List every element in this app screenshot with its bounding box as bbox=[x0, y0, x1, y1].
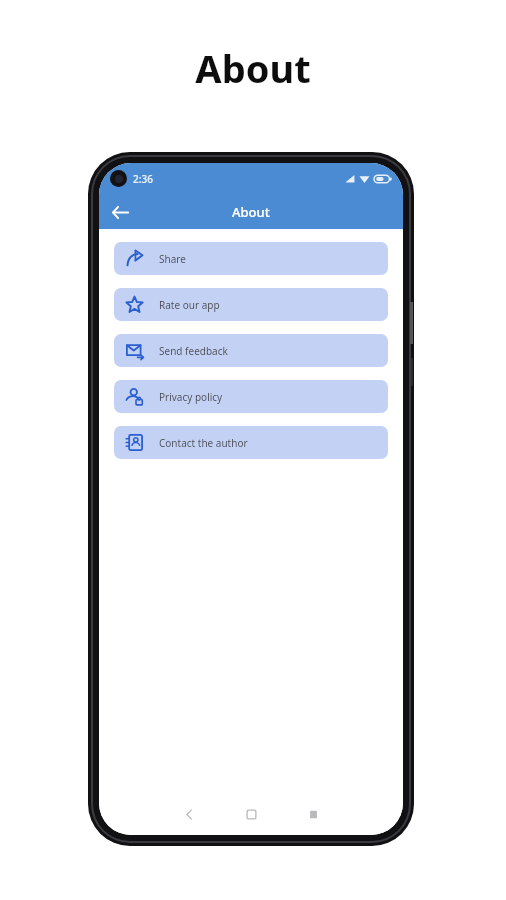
button[interactable]: Recent apps bbox=[299, 800, 327, 828]
button[interactable]: Send feedback bbox=[114, 334, 388, 367]
button[interactable]: Privacy policy bbox=[114, 380, 388, 413]
staticText: 2:36 bbox=[133, 172, 153, 186]
button[interactable]: Contact the author bbox=[114, 426, 388, 459]
button[interactable]: Rate our app bbox=[114, 288, 388, 321]
button[interactable]: Home bbox=[237, 800, 265, 828]
button[interactable]: Share bbox=[114, 242, 388, 275]
button[interactable]: Back bbox=[175, 800, 203, 828]
staticText: Share bbox=[159, 252, 186, 266]
staticText: About bbox=[0, 42, 506, 94]
staticText: Rate our app bbox=[159, 298, 220, 312]
staticText: Send feedback bbox=[159, 344, 228, 358]
button[interactable]: Back bbox=[105, 197, 135, 227]
staticText: About bbox=[232, 203, 270, 221]
staticText: Privacy policy bbox=[159, 390, 223, 404]
staticText: Contact the author bbox=[159, 436, 248, 450]
